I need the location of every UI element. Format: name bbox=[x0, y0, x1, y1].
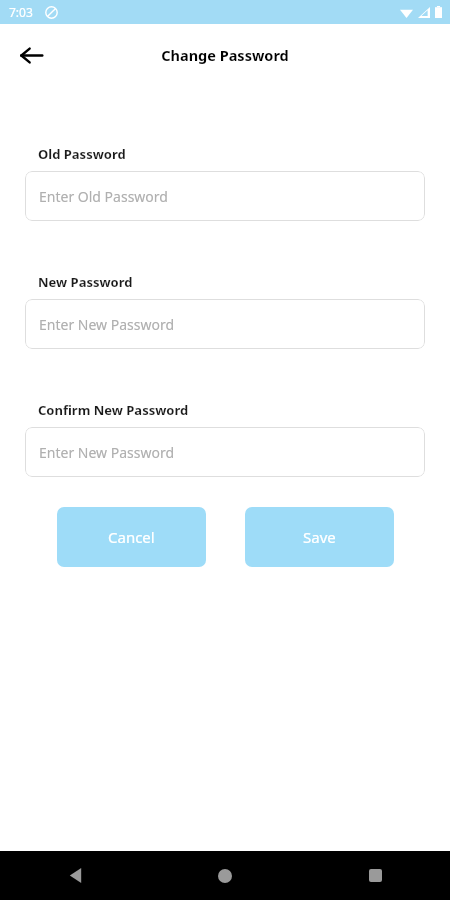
staticText: Save bbox=[303, 527, 336, 547]
staticText: New Password bbox=[38, 273, 133, 291]
button[interactable]: Enter New Password bbox=[25, 427, 425, 477]
staticText: Enter New Password bbox=[39, 443, 175, 462]
staticText: Old Password bbox=[38, 145, 126, 163]
staticText: Enter New Password bbox=[39, 315, 175, 334]
button[interactable]: Back bbox=[14, 38, 48, 72]
button[interactable]: Enter Old Password bbox=[25, 171, 425, 221]
staticText: 7:03 bbox=[9, 4, 33, 20]
button[interactable]: Enter New Password bbox=[25, 299, 425, 349]
staticText: Cancel bbox=[108, 527, 155, 547]
staticText: Change Password bbox=[161, 45, 289, 65]
button[interactable]: Save bbox=[245, 507, 394, 567]
staticText: Confirm New Password bbox=[38, 401, 189, 419]
staticText: Enter Old Password bbox=[39, 187, 168, 206]
button[interactable]: Back bbox=[0, 851, 150, 900]
button[interactable]: Cancel bbox=[57, 507, 206, 567]
button[interactable]: Home bbox=[150, 851, 300, 900]
button[interactable]: Recent apps bbox=[300, 851, 450, 900]
